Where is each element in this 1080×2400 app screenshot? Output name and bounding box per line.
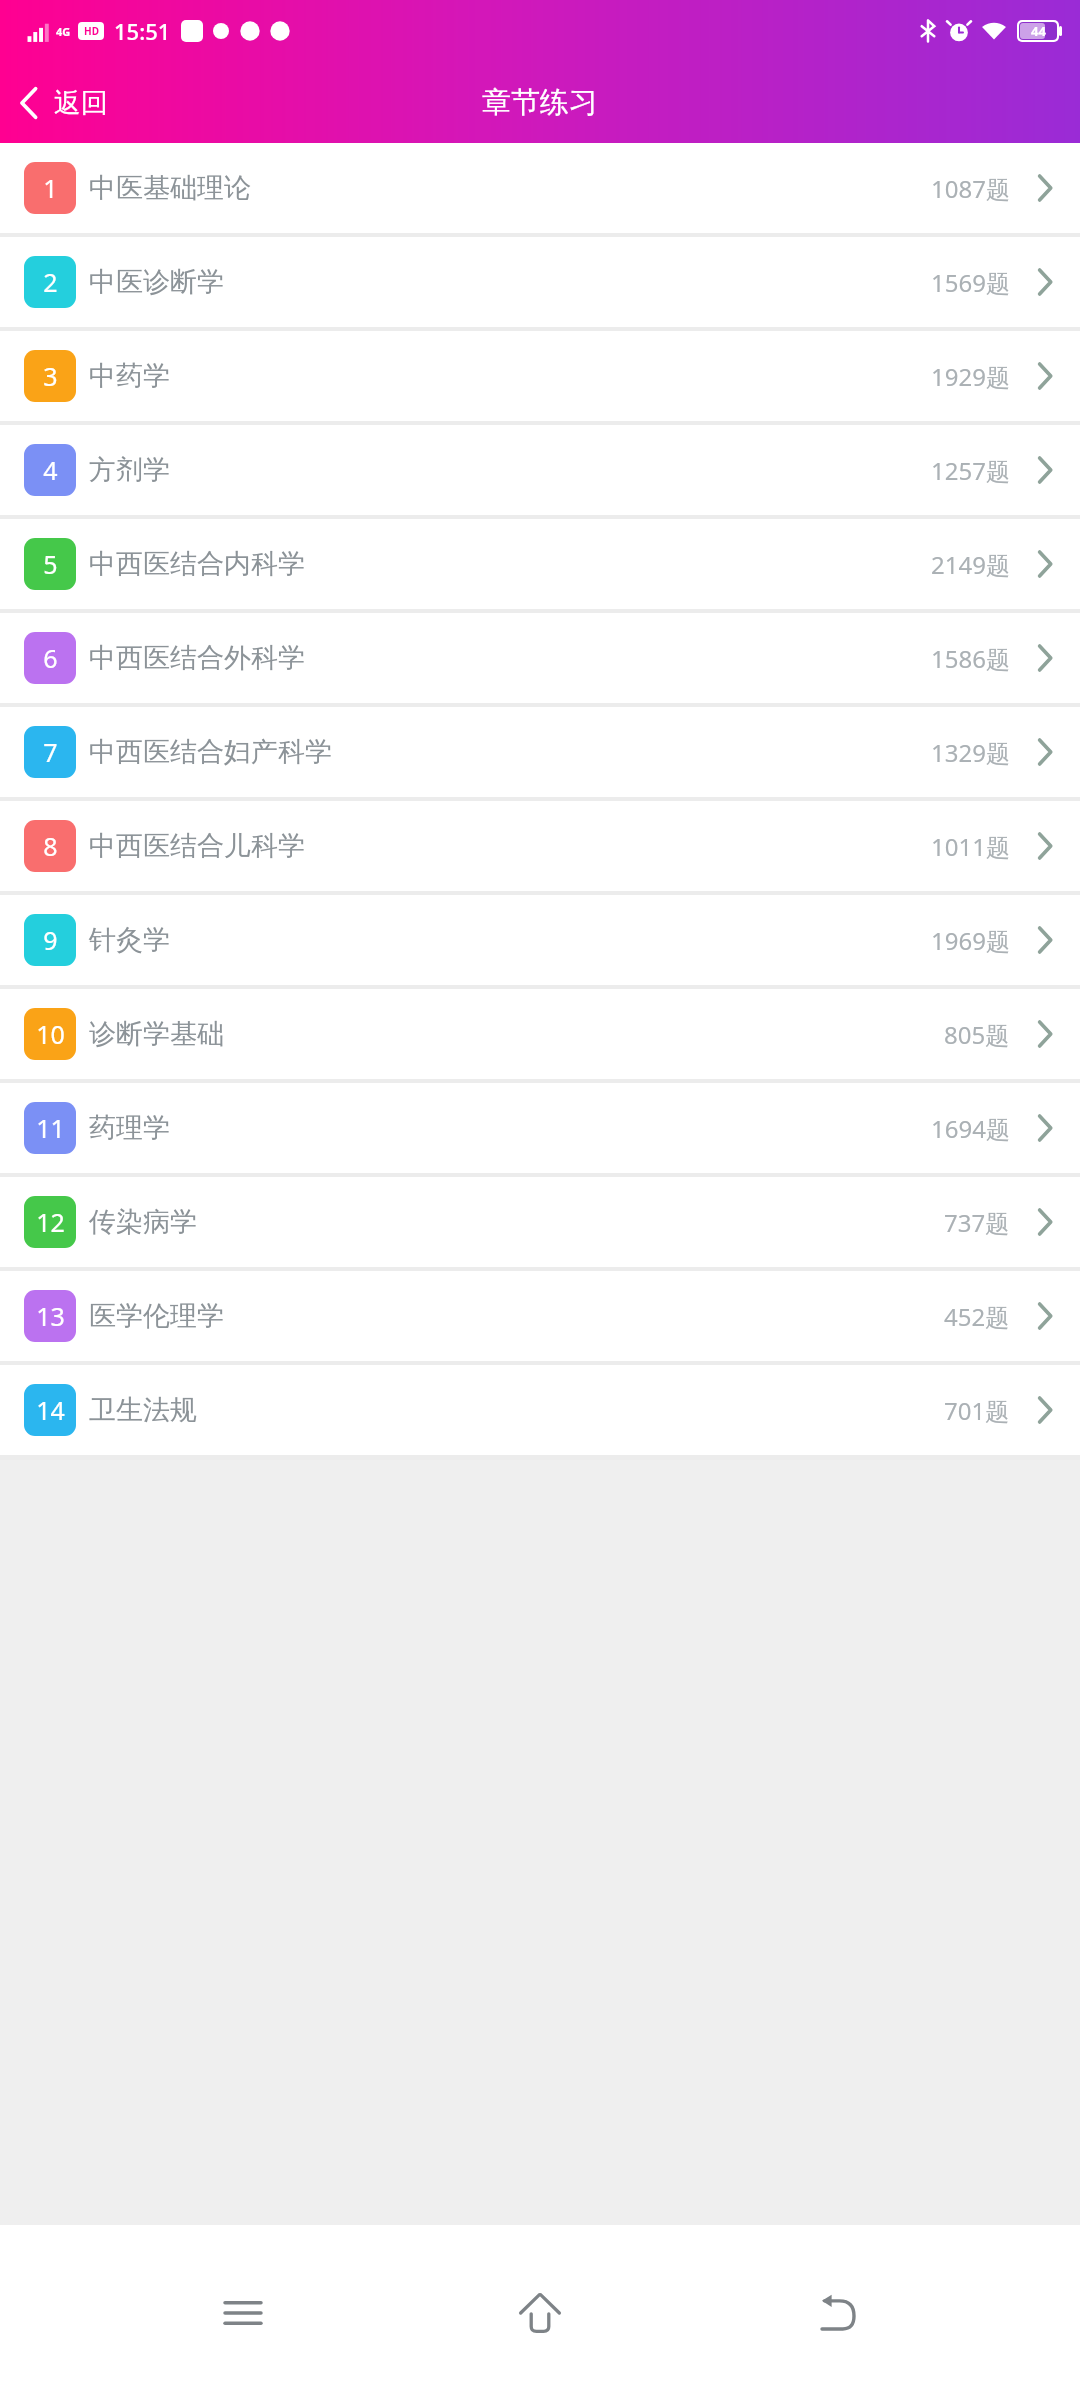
staticText: 1694题 xyxy=(931,1112,1010,1145)
staticText: 11 xyxy=(36,1111,65,1145)
staticText: 中药学 xyxy=(89,359,170,393)
staticText: 7 xyxy=(43,735,58,769)
staticText: 1586题 xyxy=(931,642,1010,675)
button[interactable]: 13 xyxy=(0,1271,1080,1361)
staticText: 卫生法规 xyxy=(89,1393,197,1427)
staticText: 6 xyxy=(43,641,58,675)
staticText: 诊断学基础 xyxy=(89,1017,224,1051)
staticText: 14 xyxy=(36,1393,65,1427)
staticText: 章节练习 xyxy=(482,84,598,121)
staticText: 737题 xyxy=(944,1206,1010,1239)
button[interactable]: 14 xyxy=(0,1365,1080,1455)
staticText: 2149题 xyxy=(931,548,1010,581)
staticText: 2 xyxy=(43,265,58,299)
button[interactable]: 9 xyxy=(0,895,1080,985)
staticText: 8 xyxy=(43,829,58,863)
staticText: 药理学 xyxy=(89,1111,170,1145)
staticText: 5 xyxy=(43,547,58,581)
button[interactable]: 返回 xyxy=(0,62,128,143)
button[interactable]: 2 xyxy=(0,237,1080,327)
button[interactable]: Back xyxy=(783,2258,893,2368)
staticText: 中西医结合内科学 xyxy=(89,547,305,581)
staticText: 10 xyxy=(36,1017,65,1051)
staticText: 13 xyxy=(36,1299,65,1333)
staticText: 4 xyxy=(43,453,58,487)
staticText: 1929题 xyxy=(931,360,1010,393)
button[interactable]: Recent apps xyxy=(188,2258,298,2368)
staticText: 4G xyxy=(56,24,71,39)
button[interactable]: 3 xyxy=(0,331,1080,421)
staticText: 701题 xyxy=(944,1394,1010,1427)
staticText: 方剂学 xyxy=(89,453,170,487)
staticText: 1569题 xyxy=(931,266,1010,299)
button[interactable]: 6 xyxy=(0,613,1080,703)
staticText: 1087题 xyxy=(931,172,1010,205)
staticText: 中西医结合外科学 xyxy=(89,641,305,675)
staticText: 44 xyxy=(1031,22,1046,40)
staticText: 15:51 xyxy=(114,16,171,46)
button[interactable]: 1 xyxy=(0,143,1080,233)
staticText: 805题 xyxy=(944,1018,1010,1051)
button[interactable]: Home xyxy=(485,2258,595,2368)
staticText: 9 xyxy=(43,923,58,957)
staticText: 1969题 xyxy=(931,924,1010,957)
staticText: 返回 xyxy=(54,86,108,120)
staticText: 中西医结合儿科学 xyxy=(89,829,305,863)
button[interactable]: 8 xyxy=(0,801,1080,891)
button[interactable]: 7 xyxy=(0,707,1080,797)
staticText: 1011题 xyxy=(931,830,1010,863)
staticText: 12 xyxy=(36,1205,65,1239)
staticText: 1257题 xyxy=(931,454,1010,487)
staticText: 传染病学 xyxy=(89,1205,197,1239)
staticText: 452题 xyxy=(944,1300,1010,1333)
staticText: 1 xyxy=(43,171,58,205)
button[interactable]: 11 xyxy=(0,1083,1080,1173)
staticText: 中医基础理论 xyxy=(89,171,251,205)
staticText: 医学伦理学 xyxy=(89,1299,224,1333)
staticText: 针灸学 xyxy=(89,923,170,957)
staticText: HD xyxy=(84,24,99,38)
staticText: 中医诊断学 xyxy=(89,265,224,299)
button[interactable]: 4 xyxy=(0,425,1080,515)
button[interactable]: 5 xyxy=(0,519,1080,609)
button[interactable]: 12 xyxy=(0,1177,1080,1267)
button[interactable]: 10 xyxy=(0,989,1080,1079)
staticText: 1329题 xyxy=(931,736,1010,769)
staticText: 3 xyxy=(43,359,58,393)
staticText: 中西医结合妇产科学 xyxy=(89,735,332,769)
